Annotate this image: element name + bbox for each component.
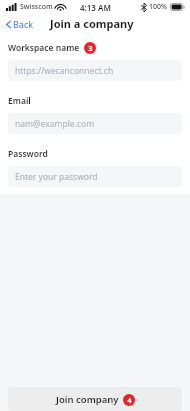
staticText: Join company [56,393,119,406]
staticText: Swisscom [20,2,53,12]
button[interactable]: https://wecanconnect.ch [8,60,182,81]
staticText: 4:13 AM [80,2,111,13]
button[interactable]: Back [0,15,40,33]
button[interactable]: Enter your password [8,166,182,187]
staticText: 100% [149,2,167,12]
staticText: Email [8,95,31,107]
staticText: 4 [127,395,132,405]
staticText: 3 [88,43,93,53]
button[interactable]: nam@example.com [8,113,182,134]
staticText: Enter your password [15,171,98,183]
staticText: Password [8,148,48,160]
staticText: https://wecanconnect.ch [15,65,114,77]
staticText: Join a company [50,16,134,31]
staticText: Workspace name [8,42,80,54]
staticText: nam@example.com [15,118,95,130]
staticText: Back [13,18,34,30]
button[interactable]: Join company [8,387,182,411]
